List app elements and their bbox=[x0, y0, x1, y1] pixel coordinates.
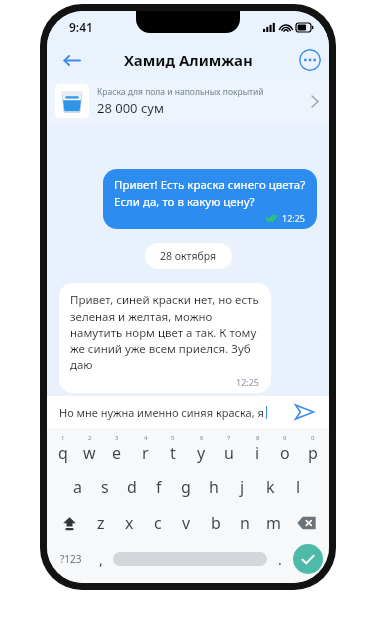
button[interactable]: c bbox=[143, 508, 172, 538]
staticText: Привет! Есть краска синего цвета? Если д… bbox=[114, 177, 306, 209]
staticText: 12:25 bbox=[282, 212, 306, 224]
staticText: q bbox=[58, 442, 68, 464]
button[interactable]: 1 bbox=[49, 432, 76, 466]
button[interactable]: 8 bbox=[243, 432, 271, 466]
button[interactable]: h bbox=[200, 472, 228, 502]
staticText: l bbox=[296, 476, 301, 498]
button[interactable]: 2 bbox=[76, 432, 103, 466]
button[interactable]: 9 bbox=[271, 432, 299, 466]
button[interactable]: j bbox=[228, 472, 256, 502]
staticText: 3 bbox=[115, 434, 119, 442]
staticText: 5 bbox=[171, 434, 175, 442]
button[interactable]: 0 bbox=[299, 432, 327, 466]
staticText: , bbox=[99, 550, 103, 569]
staticText: p bbox=[308, 442, 318, 464]
button[interactable]: Space bbox=[113, 552, 267, 566]
staticText: f bbox=[156, 476, 162, 498]
staticText: j bbox=[240, 476, 245, 498]
button[interactable]: z bbox=[87, 508, 115, 538]
button[interactable]: k bbox=[256, 472, 284, 502]
button[interactable]: Краска для пола и напольных покрытий bbox=[47, 79, 329, 123]
button[interactable]: Back bbox=[53, 42, 89, 78]
staticText: t bbox=[170, 442, 176, 464]
button[interactable]: f bbox=[145, 472, 172, 502]
button[interactable]: s bbox=[91, 472, 118, 502]
button[interactable]: 7 bbox=[215, 432, 243, 466]
staticText: 9 bbox=[283, 434, 287, 442]
staticText: Хамид Алимжан bbox=[124, 50, 253, 70]
staticText: i bbox=[255, 442, 260, 464]
staticText: Привет, синей краски нет, но есть зелена… bbox=[70, 292, 260, 372]
button[interactable]: Привет, синей краски нет, но есть зелена… bbox=[59, 283, 271, 393]
button[interactable]: 5 bbox=[159, 432, 187, 466]
staticText: n bbox=[240, 512, 250, 534]
staticText: 1 bbox=[61, 434, 65, 442]
staticText: ?123 bbox=[60, 552, 82, 566]
button[interactable]: Shift bbox=[51, 508, 87, 538]
staticText: 28 октября bbox=[160, 249, 217, 263]
staticText: y bbox=[197, 442, 206, 464]
button[interactable]: l bbox=[284, 472, 312, 502]
button[interactable]: a bbox=[64, 472, 91, 502]
staticText: 8 bbox=[256, 434, 260, 442]
staticText: 4 bbox=[144, 434, 148, 442]
button[interactable]: v bbox=[172, 508, 201, 538]
button[interactable]: Enter bbox=[293, 544, 323, 574]
button[interactable]: b bbox=[201, 508, 230, 538]
staticText: v bbox=[182, 512, 191, 534]
staticText: 6 bbox=[200, 434, 204, 442]
button[interactable]: 3 bbox=[103, 432, 131, 466]
staticText: 9:41 bbox=[69, 19, 93, 35]
staticText: r bbox=[142, 442, 149, 464]
staticText: x bbox=[125, 512, 134, 534]
staticText: o bbox=[280, 442, 290, 464]
button[interactable]: . bbox=[267, 543, 293, 575]
staticText: 12:25 bbox=[236, 376, 260, 388]
staticText: z bbox=[97, 512, 105, 534]
button[interactable]: x bbox=[115, 508, 143, 538]
staticText: . bbox=[278, 550, 282, 569]
button[interactable]: n bbox=[230, 508, 259, 538]
staticText: d bbox=[127, 476, 137, 498]
staticText: k bbox=[266, 476, 275, 498]
button[interactable]: , bbox=[89, 543, 113, 575]
staticText: g bbox=[181, 476, 191, 498]
staticText: m bbox=[266, 512, 281, 534]
staticText: w bbox=[83, 442, 96, 464]
staticText: 28 000 сум bbox=[97, 99, 164, 117]
staticText: e bbox=[112, 442, 122, 464]
button[interactable]: Backspace bbox=[288, 508, 325, 538]
staticText: s bbox=[101, 476, 109, 498]
staticText: u bbox=[224, 442, 234, 464]
button[interactable]: 4 bbox=[131, 432, 159, 466]
staticText: Краска для пола и напольных покрытий bbox=[97, 86, 264, 98]
button[interactable]: g bbox=[172, 472, 200, 502]
staticText: c bbox=[154, 512, 162, 534]
button[interactable]: Send bbox=[289, 397, 319, 427]
staticText: Но мне нужна именно синяя краска, я bbox=[59, 405, 264, 420]
staticText: a bbox=[73, 476, 82, 498]
staticText: 7 bbox=[227, 434, 231, 442]
staticText: 0 bbox=[311, 434, 315, 442]
button[interactable]: ?123 bbox=[53, 543, 89, 575]
staticText: 2 bbox=[88, 434, 92, 442]
button[interactable]: d bbox=[118, 472, 145, 502]
button[interactable]: m bbox=[259, 508, 288, 538]
staticText: h bbox=[209, 476, 219, 498]
staticText: b bbox=[211, 512, 221, 534]
button[interactable]: Привет! Есть краска синего цвета? Если д… bbox=[103, 169, 317, 229]
button[interactable]: More options bbox=[299, 49, 321, 71]
button[interactable]: 6 bbox=[187, 432, 215, 466]
button[interactable]: 28 октября bbox=[145, 243, 232, 269]
